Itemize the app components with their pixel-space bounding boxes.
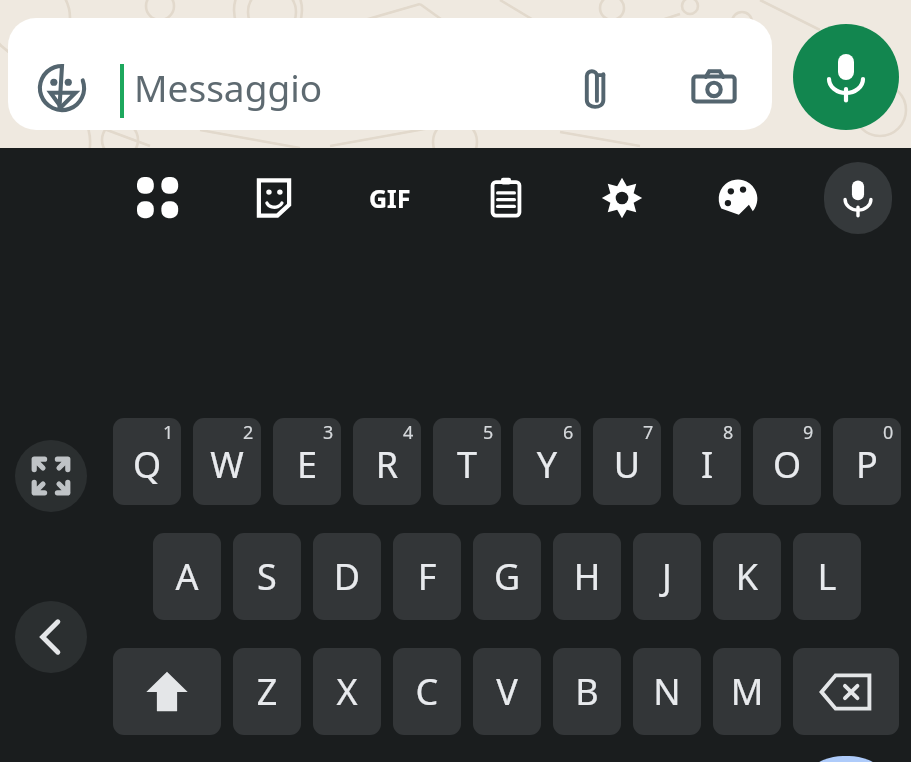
button[interactable]: V <box>473 648 541 735</box>
staticText: P <box>833 440 901 505</box>
staticText: I <box>673 440 741 505</box>
button[interactable]: Apps <box>124 164 192 232</box>
button[interactable]: N <box>633 648 701 735</box>
staticText: 6 <box>563 420 574 445</box>
staticText: T <box>433 440 501 505</box>
staticText: A <box>153 552 221 620</box>
staticText: 5 <box>483 420 494 445</box>
staticText: B <box>553 667 621 735</box>
button[interactable]: Y <box>513 418 581 505</box>
staticText: D <box>313 552 381 620</box>
staticText: 0 <box>883 420 894 445</box>
staticText: F <box>393 552 461 620</box>
staticText: 7 <box>643 420 654 445</box>
staticText: Y <box>513 440 581 505</box>
button[interactable]: M <box>713 648 781 735</box>
staticText: L <box>793 552 861 620</box>
button[interactable]: Stickers <box>8 18 772 130</box>
staticText: X <box>313 667 381 735</box>
staticText: K <box>713 552 781 620</box>
button[interactable]: O <box>753 418 821 505</box>
button[interactable]: T <box>433 418 501 505</box>
button[interactable]: Move left <box>15 601 87 673</box>
button[interactable]: S <box>233 533 301 620</box>
button[interactable]: R <box>353 418 421 505</box>
button[interactable]: Themes <box>704 164 772 232</box>
button[interactable]: L <box>793 533 861 620</box>
button[interactable]: J <box>633 533 701 620</box>
button[interactable]: Voice input <box>824 162 892 234</box>
button[interactable]: H <box>553 533 621 620</box>
button[interactable]: U <box>593 418 661 505</box>
button[interactable]: Backspace <box>793 648 899 735</box>
button[interactable]: Stickers <box>34 60 90 116</box>
button[interactable]: Shift <box>113 648 221 735</box>
button[interactable]: Attach <box>566 58 626 118</box>
button[interactable]: G <box>473 533 541 620</box>
staticText: S <box>233 552 301 620</box>
button[interactable]: GIF <box>356 164 424 232</box>
staticText: N <box>633 667 701 735</box>
staticText: O <box>753 440 821 505</box>
button[interactable]: Clipboard <box>472 164 540 232</box>
staticText: H <box>553 552 621 620</box>
button[interactable]: B <box>553 648 621 735</box>
staticText: 3 <box>323 420 334 445</box>
staticText: Messaggio <box>134 62 323 112</box>
button[interactable]: A <box>153 533 221 620</box>
staticText: C <box>393 667 461 735</box>
staticText: W <box>193 440 261 505</box>
staticText: GIF <box>369 181 411 215</box>
staticText: J <box>633 552 701 620</box>
button[interactable]: Resize keyboard <box>15 440 87 512</box>
button[interactable]: F <box>393 533 461 620</box>
button[interactable]: E <box>273 418 341 505</box>
staticText: G <box>473 552 541 620</box>
staticText: U <box>593 440 661 505</box>
staticText: 8 <box>723 420 734 445</box>
button[interactable]: Z <box>233 648 301 735</box>
staticText: Z <box>233 667 301 735</box>
button[interactable]: Q <box>113 418 181 505</box>
staticText: 2 <box>243 420 254 445</box>
button[interactable]: Camera <box>684 58 744 118</box>
staticText: 9 <box>803 420 814 445</box>
staticText: 4 <box>403 420 414 445</box>
button[interactable]: Voice message <box>793 24 899 130</box>
button[interactable]: C <box>393 648 461 735</box>
button[interactable]: Enter <box>793 756 899 762</box>
button[interactable]: Settings <box>588 164 656 232</box>
staticText: M <box>713 667 781 735</box>
button[interactable]: W <box>193 418 261 505</box>
button[interactable]: X <box>313 648 381 735</box>
button[interactable]: Stickers <box>240 164 308 232</box>
staticText: Q <box>113 440 181 505</box>
button[interactable]: I <box>673 418 741 505</box>
staticText: 1 <box>163 420 174 445</box>
button[interactable]: P <box>833 418 901 505</box>
staticText: V <box>473 667 541 735</box>
staticText: E <box>273 440 341 505</box>
button[interactable]: K <box>713 533 781 620</box>
button[interactable]: D <box>313 533 381 620</box>
staticText: R <box>353 440 421 505</box>
